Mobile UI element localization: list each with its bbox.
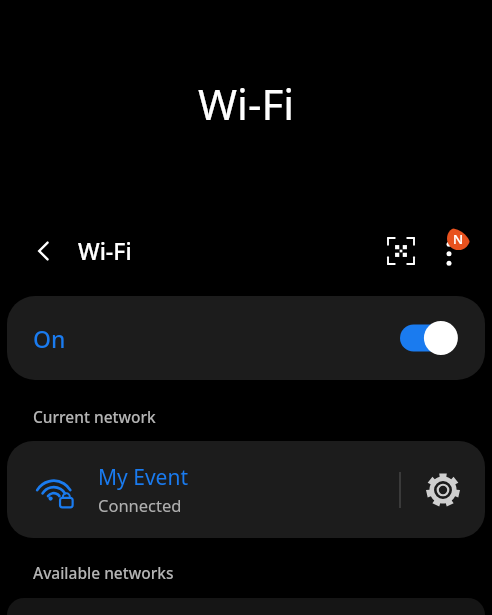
staticText: Wi-Fi xyxy=(198,75,295,132)
staticText: Connected xyxy=(98,494,182,516)
staticText: N xyxy=(453,230,464,248)
button[interactable]: Network settings xyxy=(401,441,485,538)
staticText: Wi-Fi xyxy=(78,235,132,266)
button[interactable]: My Event xyxy=(7,441,399,538)
staticText: On xyxy=(33,323,66,354)
button[interactable]: On xyxy=(7,296,485,380)
button[interactable]: Wi-Fi on xyxy=(400,321,460,355)
staticText: My Event xyxy=(98,463,188,492)
button[interactable]: Scan QR code xyxy=(378,228,424,274)
button[interactable]: Navigate up xyxy=(20,227,68,275)
staticText: Current network xyxy=(33,406,156,427)
button[interactable]: More options xyxy=(426,228,472,274)
staticText: Available networks xyxy=(33,562,174,583)
